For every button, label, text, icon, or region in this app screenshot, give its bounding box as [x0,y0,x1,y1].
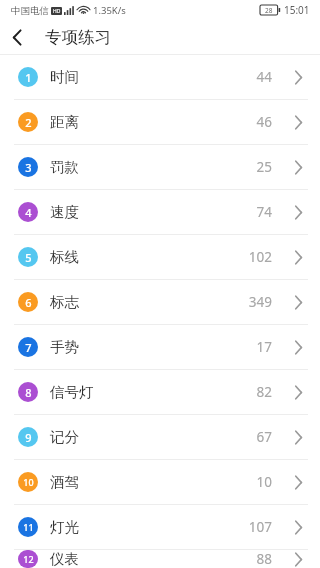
staticText: 10 [256,473,272,491]
staticText: 酒驾 [50,473,79,491]
staticText: 3 [25,160,32,175]
staticText: 107 [248,518,272,536]
staticText: 46 [256,113,272,131]
staticText: 2 [25,115,32,130]
staticText: 罚款 [50,158,79,176]
button[interactable]: 7 [0,325,320,369]
staticText: 102 [248,248,272,266]
staticText: 5 [25,250,32,265]
button[interactable]: Back [0,20,34,54]
button[interactable]: 9 [0,415,320,459]
staticText: 349 [248,293,272,311]
staticText: 25 [256,158,272,176]
staticText: 中国电信 [11,5,49,17]
button[interactable]: 12 [0,550,320,568]
button[interactable]: 3 [0,145,320,189]
staticText: 12 [23,553,34,565]
staticText: 44 [256,68,272,86]
staticText: 速度 [50,203,79,221]
staticText: 灯光 [50,518,79,536]
staticText: HD [53,8,61,15]
staticText: 标线 [50,248,79,266]
button[interactable]: 11 [0,505,320,549]
staticText: 28 [265,6,273,15]
button[interactable]: 2 [0,100,320,144]
staticText: 仪表 [50,550,79,568]
staticText: 手势 [50,338,79,356]
button[interactable]: 5 [0,235,320,279]
staticText: 67 [256,428,272,446]
button[interactable]: 1 [0,55,320,99]
staticText: 8 [25,385,32,400]
staticText: 11 [23,521,34,533]
staticText: 1.35K/s [93,4,126,17]
staticText: 82 [256,383,272,401]
staticText: 信号灯 [50,383,94,401]
staticText: 15:01 [284,3,310,17]
button[interactable]: 10 [0,460,320,504]
staticText: 10 [23,476,34,488]
staticText: 9 [25,430,32,445]
staticText: 74 [256,203,272,221]
staticText: 1 [25,70,32,85]
button[interactable]: 6 [0,280,320,324]
staticText: 专项练习 [45,27,111,48]
staticText: 17 [256,338,272,356]
staticText: 6 [25,295,32,310]
staticText: 距离 [50,113,79,131]
staticText: 4 [25,205,32,220]
staticText: 88 [256,550,272,568]
button[interactable]: 8 [0,370,320,414]
staticText: 记分 [50,428,79,446]
staticText: 7 [25,340,32,355]
staticText: 标志 [50,293,79,311]
staticText: 时间 [50,68,79,86]
button[interactable]: 4 [0,190,320,234]
